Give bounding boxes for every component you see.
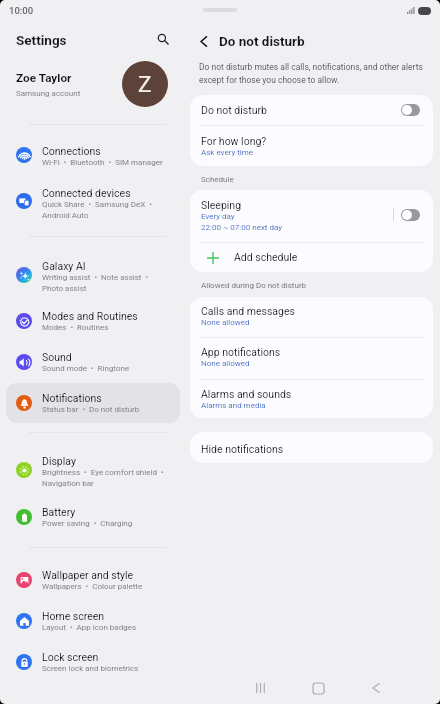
button[interactable]: Home [305, 675, 331, 701]
staticText: None allowed [201, 359, 250, 368]
staticText: Sleeping [201, 199, 242, 211]
staticText: Zoe Taylor [16, 71, 72, 85]
button[interactable]: Alarms and sounds [190, 380, 433, 418]
staticText: Home screen [42, 610, 105, 622]
button[interactable]: Hide notifications [190, 432, 433, 463]
button[interactable]: Galaxy AI [6, 250, 180, 299]
staticText: Do not disturb [201, 104, 267, 116]
staticText: Android Auto [42, 211, 89, 220]
button[interactable]: Display [6, 445, 180, 494]
staticText: For how long? [201, 135, 267, 147]
staticText: Allowed during Do not disturb [201, 281, 307, 290]
button[interactable]: Search [152, 28, 176, 52]
staticText: Power saving • Charging [42, 519, 133, 528]
staticText: None allowed [201, 318, 250, 327]
staticText: Display [42, 455, 76, 467]
button[interactable]: Sleeping [190, 190, 433, 242]
button[interactable]: Add schedule [190, 243, 433, 272]
staticText: Settings [16, 32, 67, 48]
staticText: Do not disturb mutes all calls, notifica… [199, 62, 423, 85]
staticText: 10:00 [9, 5, 34, 16]
button[interactable]: Home screen [6, 600, 180, 637]
button[interactable]: Connected devices [6, 177, 180, 226]
staticText: Alarms and sounds [201, 388, 292, 400]
button[interactable]: Toggle [401, 104, 420, 116]
staticText: Ask every time [201, 148, 254, 157]
button[interactable]: Notifications [6, 382, 180, 419]
button[interactable]: Battery [6, 496, 180, 533]
staticText: Sound mode • Ringtone [42, 364, 130, 373]
button[interactable]: Back [191, 29, 215, 53]
button[interactable]: Back [363, 675, 389, 701]
button[interactable]: For how long? [190, 126, 433, 166]
staticText: Notifications [42, 392, 102, 404]
staticText: Alarms and media [201, 401, 266, 410]
button[interactable]: Connections [6, 135, 180, 172]
button[interactable]: Wallpaper and style [6, 559, 180, 596]
staticText: Wallpaper and style [42, 569, 134, 581]
button[interactable]: Do not disturb [190, 95, 433, 125]
staticText: Sound [42, 351, 72, 363]
staticText: 22:00 ~ 07:00 next day [201, 223, 283, 232]
staticText: Samsung account [16, 89, 81, 98]
staticText: Connections [42, 145, 101, 157]
button[interactable]: Toggle [401, 209, 420, 221]
staticText: Status bar • Do not disturb [42, 405, 140, 414]
button[interactable]: Recent apps [247, 675, 273, 701]
staticText: Modes • Routines [42, 323, 109, 332]
staticText: Wi-Fi • Bluetooth • SIM manager [42, 158, 163, 167]
staticText: Quick Share • Samsung DeX • [42, 200, 152, 209]
staticText: Galaxy AI [42, 260, 86, 272]
staticText: Battery [42, 506, 76, 518]
staticText: Wallpapers • Colour palette [42, 582, 143, 591]
staticText: App notifications [201, 346, 281, 358]
staticText: Z [138, 71, 152, 97]
staticText: Do not disturb [219, 33, 305, 49]
button[interactable]: Calls and messages [190, 297, 433, 337]
staticText: Hide notifications [201, 443, 284, 455]
staticText: Calls and messages [201, 305, 295, 317]
staticText: Connected devices [42, 187, 131, 199]
staticText: Brightness • Eye comfort shield • [42, 468, 164, 477]
staticText: Layout • App icon badges [42, 623, 137, 632]
staticText: Schedule [201, 175, 234, 184]
staticText: Every day [201, 212, 235, 221]
button[interactable]: Modes and Routines [6, 300, 180, 337]
staticText: Modes and Routines [42, 310, 138, 322]
button[interactable]: Sound [6, 341, 180, 378]
staticText: Add schedule [234, 251, 298, 263]
button[interactable]: Zoe Taylor [0, 58, 183, 110]
staticText: Photo assist [42, 284, 87, 293]
staticText: Navigation bar [42, 479, 94, 488]
staticText: Writing assist • Note assist • [42, 273, 149, 282]
button[interactable]: Lock screen [6, 641, 180, 678]
button[interactable]: App notifications [190, 338, 433, 379]
staticText: Screen lock and biometrics [42, 664, 139, 673]
staticText: Lock screen [42, 651, 99, 663]
